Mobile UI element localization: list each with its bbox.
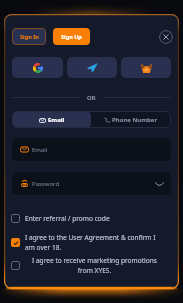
button[interactable]: Email: [12, 111, 91, 128]
button[interactable]: I agree to receive marketing promotions …: [11, 256, 164, 275]
button[interactable]: Sign In: [12, 28, 46, 45]
button[interactable]: I agree to the User Agreement & confirm …: [11, 233, 164, 252]
button[interactable]: Sign in with Google: [12, 57, 63, 78]
staticText: Phone Number: [112, 116, 158, 124]
button[interactable]: Close: [159, 30, 173, 44]
staticText: Password: [32, 180, 60, 188]
staticText: Email: [32, 146, 48, 154]
button[interactable]: Email: [12, 138, 171, 161]
staticText: I agree to the User Agreement & confirm …: [25, 233, 164, 252]
button[interactable]: Enter referral / promo code: [11, 214, 164, 223]
button[interactable]: Password: [12, 172, 171, 195]
staticText: I agree to receive marketing promotions …: [25, 256, 164, 275]
button[interactable]: Show password: [155, 179, 164, 188]
staticText: Sign Up: [61, 33, 82, 40]
staticText: Enter referral / promo code: [25, 214, 110, 223]
staticText: OR: [87, 94, 96, 100]
button[interactable]: Sign in with Telegram: [67, 57, 117, 78]
button[interactable]: Sign Up: [53, 28, 90, 45]
button[interactable]: Phone Number: [91, 111, 171, 128]
button[interactable]: Sign in with MetaMask: [121, 57, 171, 78]
staticText: Email: [48, 116, 65, 124]
staticText: Sign In: [20, 33, 39, 40]
